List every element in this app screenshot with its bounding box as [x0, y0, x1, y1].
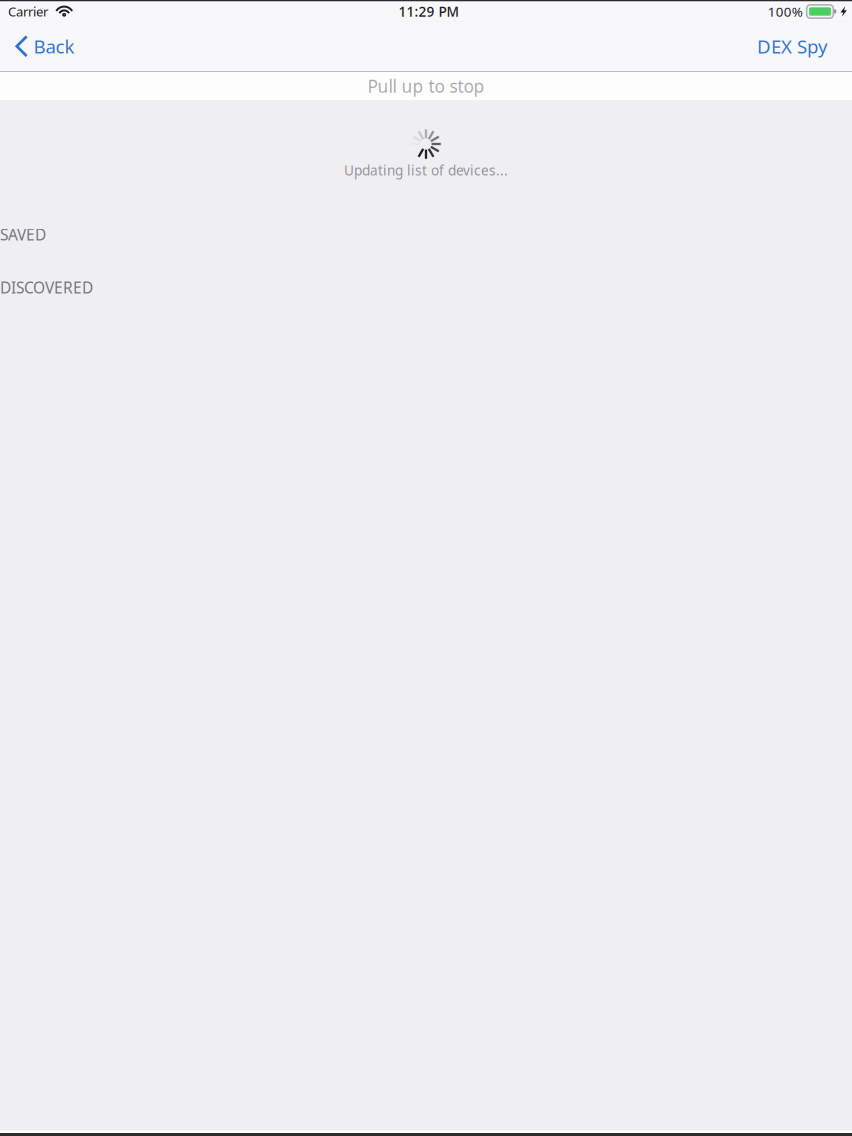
- staticText: 100%: [768, 2, 803, 21]
- button[interactable]: DEX Spy: [745, 21, 840, 71]
- staticText: Updating list of devices...: [344, 161, 508, 179]
- staticText: 11:29 PM: [398, 2, 459, 21]
- staticText: Back: [33, 33, 74, 59]
- staticText: Pull up to stop: [367, 74, 484, 98]
- staticText: DISCOVERED: [0, 277, 93, 298]
- button[interactable]: Back: [0, 21, 84, 71]
- staticText: DEX Spy: [757, 33, 828, 59]
- staticText: SAVED: [0, 224, 46, 245]
- staticText: Carrier: [8, 3, 48, 20]
